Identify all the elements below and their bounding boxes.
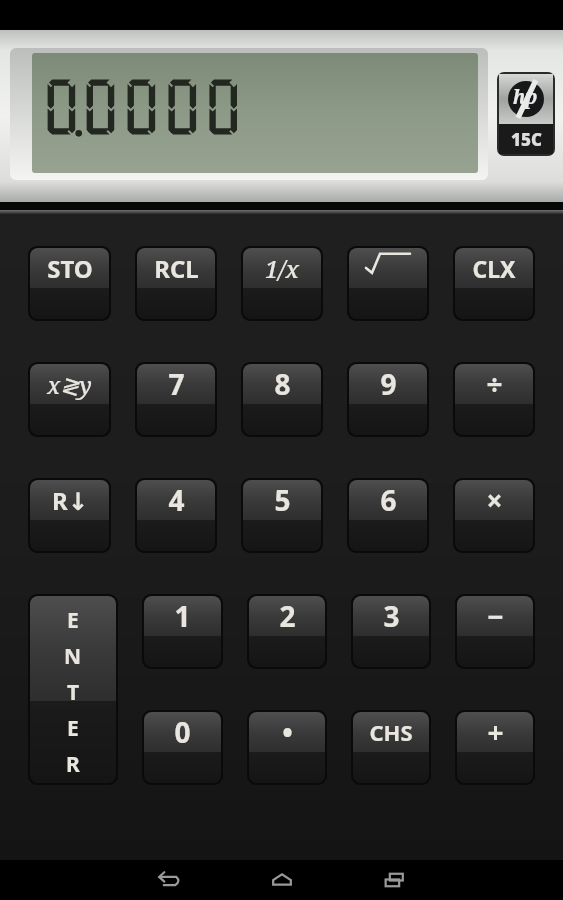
button[interactable]: 2 [249,596,325,667]
button[interactable]: Multiply [455,480,533,551]
button[interactable]: Subtract [457,596,533,667]
button[interactable]: 0 [144,712,221,783]
button[interactable]: 1/x [243,248,321,319]
button[interactable]: 6 [349,480,427,551]
staticText: R [66,750,80,779]
button[interactable]: 4 [137,480,215,551]
staticText: 4 [168,481,185,519]
button[interactable]: CLX [455,248,533,319]
button[interactable]: Back [112,860,225,900]
staticText: 5 [274,481,291,519]
button[interactable]: STO [30,248,109,319]
staticText: T [67,678,80,707]
button[interactable]: Home [225,860,338,900]
button[interactable]: 1 [144,596,221,667]
staticText: RCL [154,252,199,285]
staticText: CLX [472,253,516,284]
staticText: 6 [380,481,397,519]
staticText: 3 [383,597,400,635]
button[interactable]: 7 [137,364,215,435]
button[interactable]: R↓ [30,480,109,551]
button[interactable]: 3 [353,596,429,667]
button[interactable]: Decimal point [249,712,325,783]
staticText: E [67,714,79,743]
staticText: 2 [279,597,296,635]
button[interactable]: Add [457,712,533,783]
staticText: hp [513,84,538,110]
button[interactable]: 9 [349,364,427,435]
staticText: STO [47,252,93,285]
staticText: E [67,606,79,635]
staticText: 7 [168,365,185,403]
staticText: CHS [369,717,413,747]
staticText: + [487,713,504,751]
button[interactable]: 5 [243,480,321,551]
staticText: 0 [174,713,191,751]
staticText: • [282,713,293,751]
button[interactable]: Square root [349,248,427,319]
staticText: 1 [174,597,191,635]
button[interactable]: Recent apps [338,860,451,900]
staticText: × [486,481,503,519]
staticText: 1/x [265,252,299,285]
button[interactable]: E [30,596,116,783]
button[interactable]: CHS [353,712,429,783]
button[interactable]: x≷y [30,364,109,435]
button[interactable]: Divide [455,364,533,435]
staticText: 15C [511,128,542,151]
staticText: 9 [380,365,397,403]
staticText: x≷y [47,369,92,400]
button[interactable]: RCL [137,248,215,319]
staticText: R↓ [52,484,88,517]
button[interactable]: 8 [243,364,321,435]
staticText: 8 [274,365,291,403]
staticText: N [64,642,82,671]
staticText: ÷ [486,365,503,403]
staticText: − [487,597,504,635]
